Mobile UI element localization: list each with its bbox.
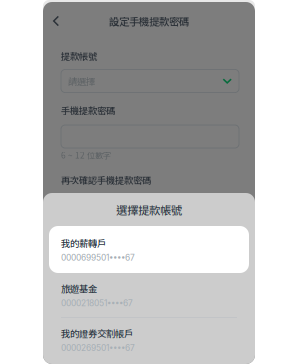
staticText: 0000218051••••67 — [61, 298, 133, 308]
staticText: 手機提款密碼 — [61, 103, 115, 117]
staticText: 0000269501••••67 — [61, 343, 135, 353]
staticText: 選擇提款帳號 — [116, 201, 182, 218]
staticText: 設定手機提款密碼 — [109, 13, 189, 29]
button[interactable]: 我的薪轉戶 — [49, 226, 249, 273]
staticText: 提款帳號 — [61, 49, 97, 62]
staticText: 0000699501••••67 — [61, 253, 135, 263]
staticText: 6 ~ 12 位數字 — [61, 149, 111, 161]
button[interactable]: 旅遊基金 — [43, 273, 255, 317]
staticText: 我的證券交割帳戶 — [61, 326, 133, 340]
staticText: 我的薪轉戶 — [61, 236, 106, 250]
button[interactable]: 我的證券交割帳戶 — [43, 318, 255, 362]
button[interactable]: Back — [43, 7, 69, 35]
staticText: 再次確認手機提款密碼 — [61, 173, 151, 186]
staticText: 旅遊基金 — [61, 282, 97, 295]
button[interactable]: 請選擇 — [61, 69, 239, 92]
staticText: 請選擇 — [68, 74, 95, 88]
